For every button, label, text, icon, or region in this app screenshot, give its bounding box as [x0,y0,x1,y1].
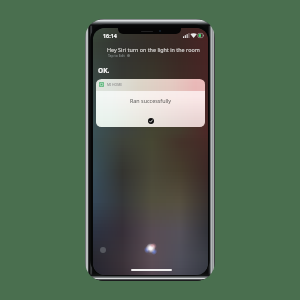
staticText: 16:14 [103,32,117,39]
button[interactable]: Keyboard [100,247,106,253]
button[interactable]: Siri [144,242,158,256]
staticText: Tap to Edit [108,53,125,58]
staticText: MI HOME [107,82,123,87]
button[interactable]: MI HOME [96,79,205,127]
staticText: Hey Siri turn on the light in the room [107,46,200,53]
staticText: Ran successfully [96,97,205,104]
staticText: OK. [98,66,110,75]
